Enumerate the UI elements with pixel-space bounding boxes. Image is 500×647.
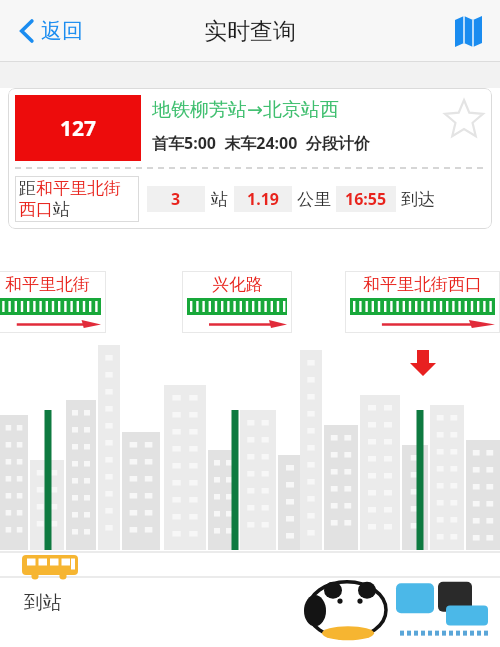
staticText: 距 — [19, 178, 36, 199]
staticText: 返回 — [41, 18, 83, 44]
button[interactable]: 127 — [8, 88, 492, 229]
staticText: 和平里北街 — [5, 274, 90, 295]
staticText: 站 — [211, 189, 228, 210]
staticText: 16:55 — [345, 188, 387, 210]
staticText: 西口 — [19, 199, 53, 220]
staticText: 实时查询 — [204, 17, 296, 46]
button[interactable]: Map — [449, 10, 488, 53]
staticText: 首车5:00 末车24:00 分段计价 — [152, 132, 370, 154]
staticText: 兴化路 — [212, 274, 263, 295]
staticText: 到达 — [401, 189, 435, 210]
staticText: 地铁柳芳站→北京站西 — [152, 98, 339, 122]
staticText: 和平里北街西口 — [363, 274, 482, 295]
staticText: 到站 — [24, 591, 62, 615]
staticText: 站 — [53, 199, 70, 220]
staticText: 和平里北街 — [36, 178, 121, 199]
staticText: 公里 — [297, 189, 331, 210]
button[interactable]: 兴化路 — [182, 271, 292, 333]
button[interactable]: 返回 — [14, 12, 89, 50]
staticText: 127 — [60, 114, 97, 143]
button[interactable]: 和平里北街 — [0, 271, 106, 333]
staticText: 3 — [171, 188, 181, 210]
button[interactable]: 和平里北街西口 — [345, 271, 500, 333]
staticText: 1.19 — [247, 188, 279, 210]
